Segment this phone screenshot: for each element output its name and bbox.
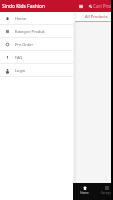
staticText: Kategori — [101, 191, 111, 195]
staticText: FAQ — [15, 55, 23, 60]
button[interactable]: Home — [0, 12, 73, 24]
button[interactable]: Pre-Order — [0, 38, 73, 50]
staticText: Home — [15, 16, 27, 21]
staticText: All Products — [85, 14, 108, 19]
staticText: Cari Produk — [93, 3, 111, 9]
staticText: Pre-Order — [15, 42, 34, 47]
staticText: Sindo Kids Fashion — [2, 3, 46, 10]
button[interactable]: Categories — [76, 0, 86, 12]
button[interactable]: Home — [73, 183, 96, 200]
button[interactable]: FAQ — [0, 51, 73, 63]
button[interactable]: Login — [0, 64, 73, 76]
staticText: Kategori Produk — [15, 29, 45, 34]
button[interactable]: Kategori — [96, 183, 111, 200]
staticText: Login — [15, 68, 26, 73]
button[interactable]: Kategori Produk — [0, 25, 73, 37]
staticText: Home — [80, 191, 89, 195]
button[interactable]: Search — [87, 0, 94, 12]
button[interactable]: All Products — [73, 12, 111, 22]
